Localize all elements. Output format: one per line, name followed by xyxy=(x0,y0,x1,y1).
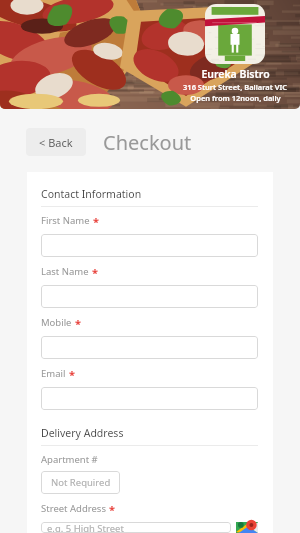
staticText: Open from 12noon, daily xyxy=(190,93,281,103)
staticText: Email xyxy=(41,367,66,380)
staticText: Contact Information xyxy=(41,187,142,201)
staticText: * xyxy=(92,265,98,280)
staticText: * xyxy=(75,316,81,331)
staticText: < Back xyxy=(39,135,73,150)
button[interactable] xyxy=(41,336,258,359)
button[interactable] xyxy=(41,234,258,257)
staticText: First Name xyxy=(41,214,90,227)
button[interactable]: Not Required xyxy=(41,471,120,494)
staticText: Checkout xyxy=(103,129,192,156)
staticText: Apartment # xyxy=(41,453,98,466)
staticText: * xyxy=(69,367,75,382)
staticText: Mobile xyxy=(41,316,72,329)
staticText: Not Required xyxy=(51,476,111,489)
staticText: 316 Sturt Street, Ballarat VIC xyxy=(183,82,287,92)
staticText: * xyxy=(93,214,99,229)
staticText: Street Address xyxy=(41,502,106,515)
button[interactable] xyxy=(41,285,258,308)
button[interactable]: < Back xyxy=(26,128,86,156)
button[interactable] xyxy=(41,387,258,410)
staticText: e.g. 5 High Street xyxy=(47,522,124,533)
staticText: * xyxy=(109,502,115,517)
button[interactable]: Open in maps xyxy=(236,522,258,533)
staticText: Delivery Address xyxy=(41,426,124,440)
staticText: Eureka Bistro xyxy=(201,67,270,81)
button[interactable]: e.g. 5 High Street xyxy=(41,522,231,533)
staticText: Last Name xyxy=(41,265,89,278)
